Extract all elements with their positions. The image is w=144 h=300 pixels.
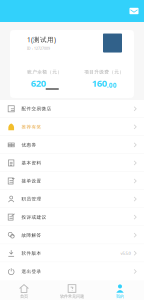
staticText: 首页 [20,294,28,299]
button[interactable]: 职员管理 [0,190,144,208]
button[interactable]: 配件交易微店 [0,100,144,118]
button[interactable]: 软件版本 [0,244,144,262]
button[interactable]: 接单设置 [0,172,144,190]
staticText: 基本资料 [21,160,41,166]
staticText: 账户余额（元） [27,69,62,75]
button[interactable]: 推荐有奖 [0,118,144,136]
button[interactable]: 投诉或建议 [0,208,144,226]
staticText: 软件版本 [21,250,41,256]
staticText: 职员管理 [21,196,41,202]
staticText: 160 [92,77,107,89]
staticText: v5.5.0 [120,250,130,256]
button[interactable]: 退出登录 [0,262,144,281]
staticText: ID：12727009 [27,46,50,51]
button[interactable]: 优惠券 [0,136,144,154]
staticText: 我的 [116,294,124,299]
staticText: 1(测试用) [27,35,56,44]
staticText: .00 [107,81,117,89]
staticText: 软件常见问题 [60,294,84,299]
staticText: 620 [31,77,46,89]
button[interactable]: 故障解答 [0,226,144,244]
staticText: 配件交易微店 [21,106,51,112]
button[interactable]: Messages [127,0,141,22]
staticText: 接单设置 [21,178,41,184]
staticText: 故障解答 [21,232,41,238]
staticText: 退出登录 [21,269,41,274]
staticText: 优惠券 [21,142,36,148]
button[interactable]: 软件常见问题 [48,281,96,300]
button[interactable]: 首页 [0,281,48,300]
staticText: 推荐有奖 [21,124,41,130]
button[interactable]: 基本资料 [0,154,144,172]
button[interactable]: 我的 [96,281,144,300]
staticText: 投诉或建议 [21,214,46,220]
staticText: 项目升级费（元） [84,69,124,75]
